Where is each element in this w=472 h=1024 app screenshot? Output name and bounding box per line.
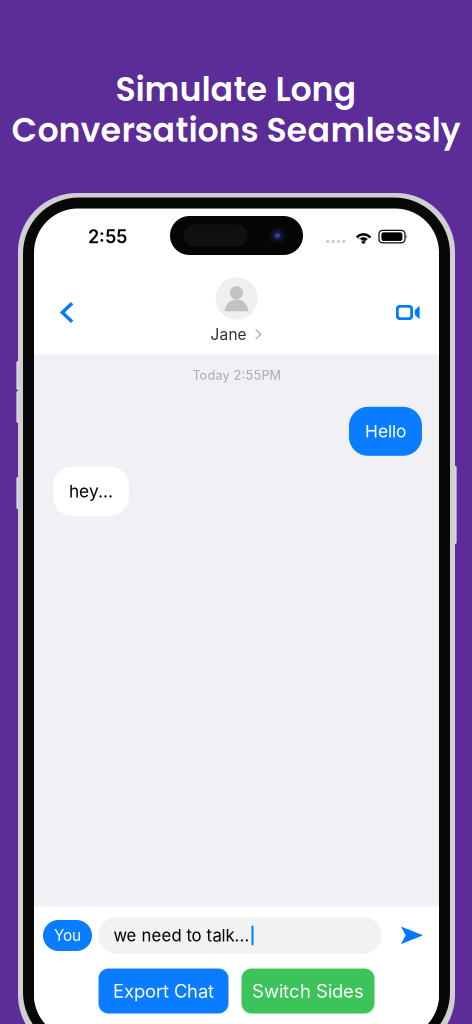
staticText: Conversations Seamlessly xyxy=(11,107,460,153)
button[interactable]: You xyxy=(43,920,92,951)
button[interactable]: Send xyxy=(397,916,427,954)
staticText: You xyxy=(54,926,81,945)
button[interactable]: Back xyxy=(47,290,87,334)
button[interactable]: Switch Sides xyxy=(241,968,374,1013)
staticText: Switch Sides xyxy=(252,980,364,1002)
button[interactable]: Video call xyxy=(388,290,428,334)
staticText: Hello xyxy=(365,421,406,442)
staticText: Export Chat xyxy=(113,980,214,1002)
staticText: 2:55 xyxy=(88,226,127,247)
staticText: Jane xyxy=(210,325,246,344)
staticText: we need to talk... xyxy=(113,925,249,946)
button[interactable]: Export Chat xyxy=(98,968,228,1013)
staticText: hey... xyxy=(69,481,113,502)
staticText: Today 2:55PM xyxy=(192,367,280,383)
staticText: Simulate Long xyxy=(115,66,356,113)
